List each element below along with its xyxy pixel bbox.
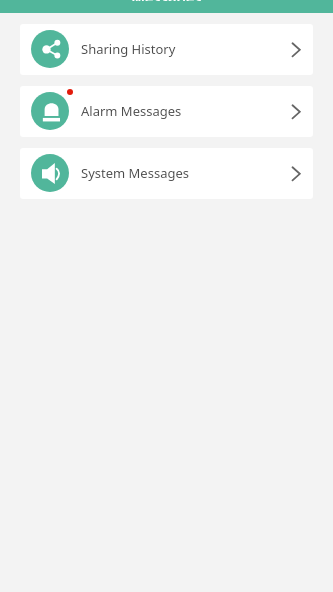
other: Open System Messages (291, 165, 301, 181)
button[interactable]: Unread (20, 86, 313, 137)
staticText: Sharing History (81, 40, 176, 58)
staticText: Alarm Messages (81, 102, 182, 120)
other: Open Alarm Messages (291, 103, 301, 119)
other: Unread (67, 89, 73, 95)
button[interactable]: Sharing History (20, 24, 313, 75)
staticText: Messages (131, 0, 202, 1)
other: Open Sharing History (291, 41, 301, 57)
button[interactable]: System Messages (20, 148, 313, 199)
staticText: System Messages (81, 164, 189, 182)
